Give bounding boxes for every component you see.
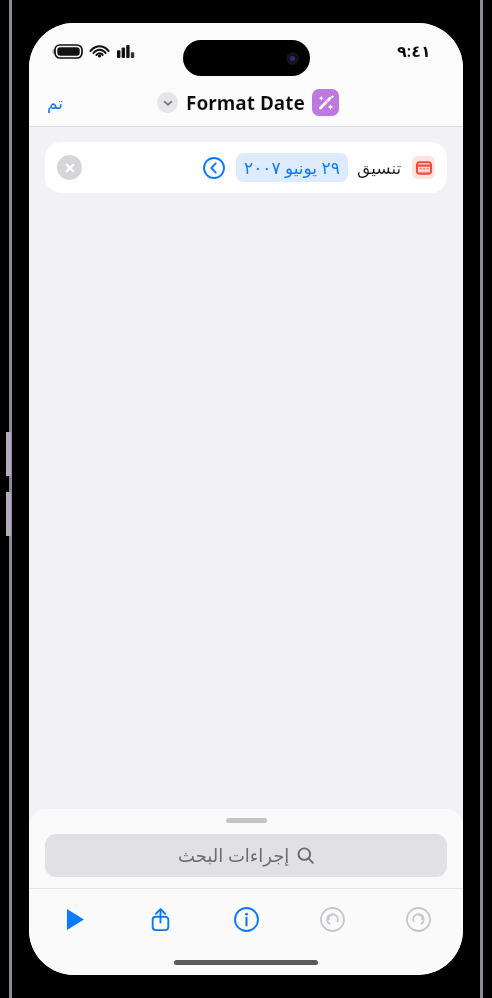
button[interactable]: Share [137,896,183,942]
button[interactable]: إجراءات البحث [45,834,447,877]
staticText: Format Date [186,90,305,116]
staticText: تنسيق [357,158,402,178]
button[interactable]: Run shortcut [51,896,97,942]
staticText: إجراءات البحث [178,843,290,868]
staticText: ٢٩ يونيو ٢٠٠٧ [244,156,340,179]
button[interactable]: ٢٩ يونيو ٢٠٠٧ [236,153,348,182]
button[interactable]: Redo [395,896,441,942]
button[interactable]: Remove action [57,155,82,180]
button[interactable]: تم [37,87,74,119]
staticText: تم [47,93,64,113]
staticText: ٩:٤١ [397,40,431,62]
button[interactable]: Remove action [45,142,447,193]
button[interactable]: Format Date [153,87,343,118]
button[interactable]: Details [223,896,269,942]
button[interactable]: Expand details [201,155,227,181]
button[interactable]: Undo [309,896,355,942]
